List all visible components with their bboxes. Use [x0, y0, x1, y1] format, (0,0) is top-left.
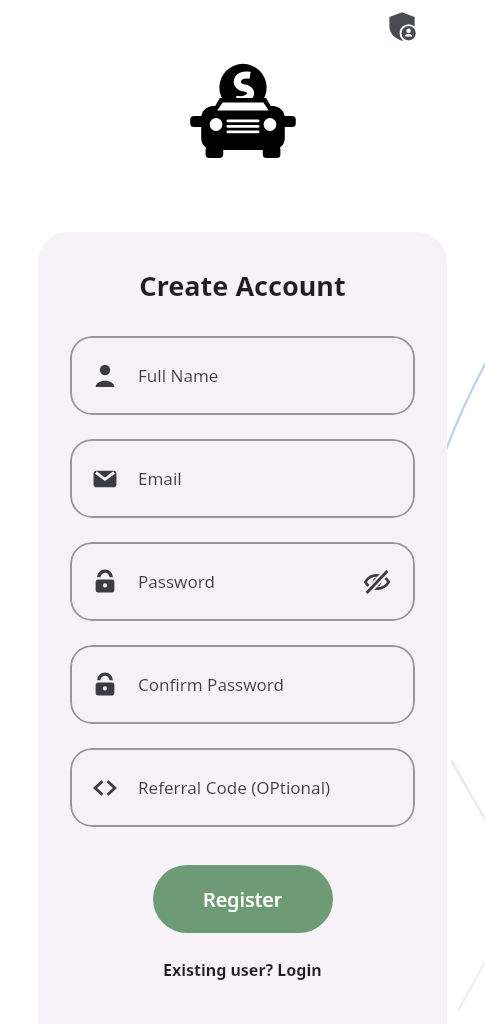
staticText: Email: [138, 467, 182, 490]
button[interactable]: Email: [70, 439, 415, 518]
staticText: Confirm Password: [138, 673, 284, 696]
button[interactable]: Toggle password visibility: [361, 566, 393, 598]
staticText: Password: [138, 570, 215, 593]
button[interactable]: Register: [153, 865, 333, 933]
button[interactable]: Existing user? Login: [155, 955, 330, 985]
button[interactable]: Confirm Password: [70, 645, 415, 724]
staticText: Referral Code (OPtional): [138, 776, 331, 799]
button[interactable]: Account protection: [382, 6, 422, 46]
staticText: Create Account: [139, 267, 346, 304]
button[interactable]: Referral Code (OPtional): [70, 748, 415, 827]
staticText: Existing user? Login: [163, 959, 322, 981]
staticText: Full Name: [138, 364, 219, 387]
button[interactable]: Full Name: [70, 336, 415, 415]
button[interactable]: Password: [70, 542, 415, 621]
staticText: Register: [203, 886, 283, 913]
